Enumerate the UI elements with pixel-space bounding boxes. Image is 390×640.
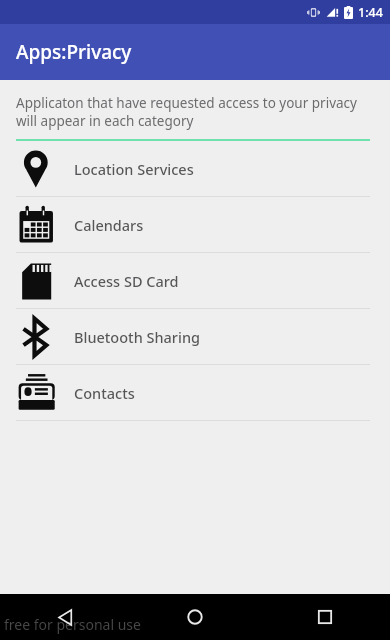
button[interactable]: Location Services [0,141,390,196]
staticText: 1:44 [358,4,383,21]
staticText: Calendars [74,215,144,235]
staticText: Location Services [74,159,194,179]
button[interactable]: Access SD Card [0,253,390,308]
staticText: Access SD Card [74,271,179,291]
button[interactable]: Home [130,594,260,640]
staticText: Applicaton that have requested access to… [16,94,368,130]
button[interactable]: Recent apps [260,594,390,640]
button[interactable]: Bluetooth Sharing [0,309,390,364]
staticText: Contacts [74,383,135,403]
staticText: Bluetooth Sharing [74,327,200,347]
staticText: free for personal use [4,615,141,634]
staticText: Apps:Privacy [16,39,132,65]
button[interactable]: Contacts [0,365,390,420]
button[interactable]: Calendars [0,197,390,252]
button[interactable]: Back [0,594,130,640]
